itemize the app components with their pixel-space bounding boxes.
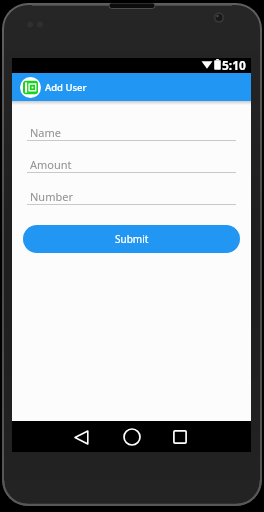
- staticText: Add User: [45, 81, 87, 94]
- staticText: 5:10: [222, 57, 246, 72]
- staticText: Amount: [30, 157, 72, 172]
- button[interactable]: [20, 77, 41, 98]
- button[interactable]: Amount: [27, 157, 236, 173]
- button[interactable]: Number: [27, 189, 236, 205]
- staticText: Number: [30, 189, 73, 204]
- button[interactable]: [165, 422, 195, 452]
- button[interactable]: [66, 422, 96, 452]
- button[interactable]: Name: [27, 125, 236, 141]
- staticText: Submit: [115, 232, 149, 246]
- button[interactable]: [117, 422, 147, 452]
- staticText: Name: [30, 125, 62, 140]
- button[interactable]: Submit: [23, 225, 240, 253]
